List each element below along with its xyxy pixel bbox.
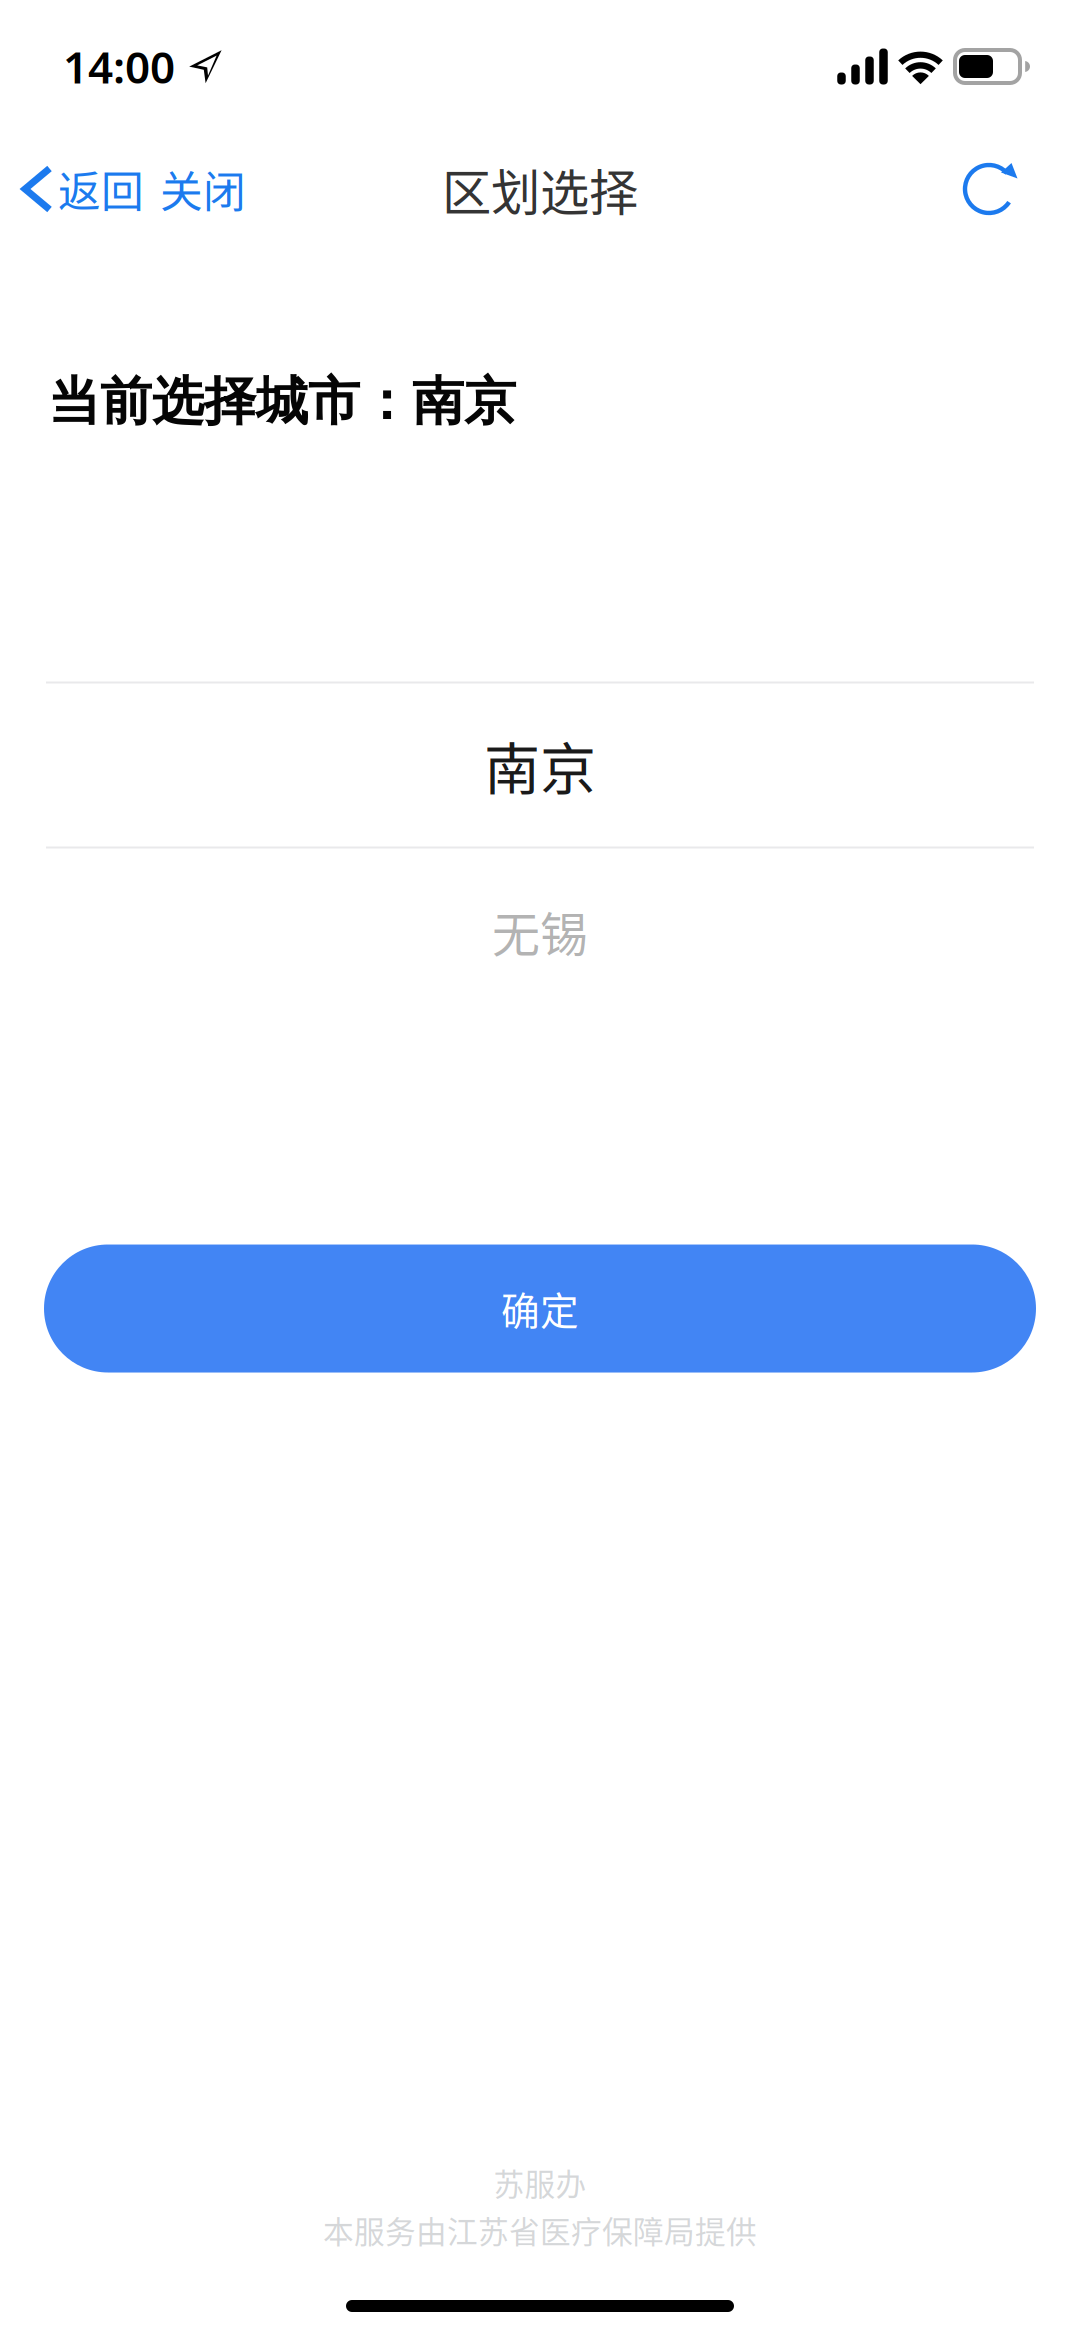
button[interactable]: 关闭 [144,144,246,234]
staticText: 返回 [58,158,144,220]
staticText: 南京 [484,724,596,806]
staticText: 确定 [501,1280,579,1336]
staticText: 14:00 [63,37,175,96]
staticText: 关闭 [160,158,246,220]
button[interactable]: 返回 [21,144,144,234]
staticText: 无锡 [492,896,588,966]
button[interactable]: 确定 [44,1244,1036,1372]
staticText: 苏服办 [493,2160,586,2205]
staticText: 当前选择城市：南京 [48,369,516,434]
staticText: 本服务由江苏省医疗保障局提供 [323,2208,757,2252]
button[interactable]: 刷新 [952,149,1032,229]
staticText: 区划选择 [442,153,638,225]
